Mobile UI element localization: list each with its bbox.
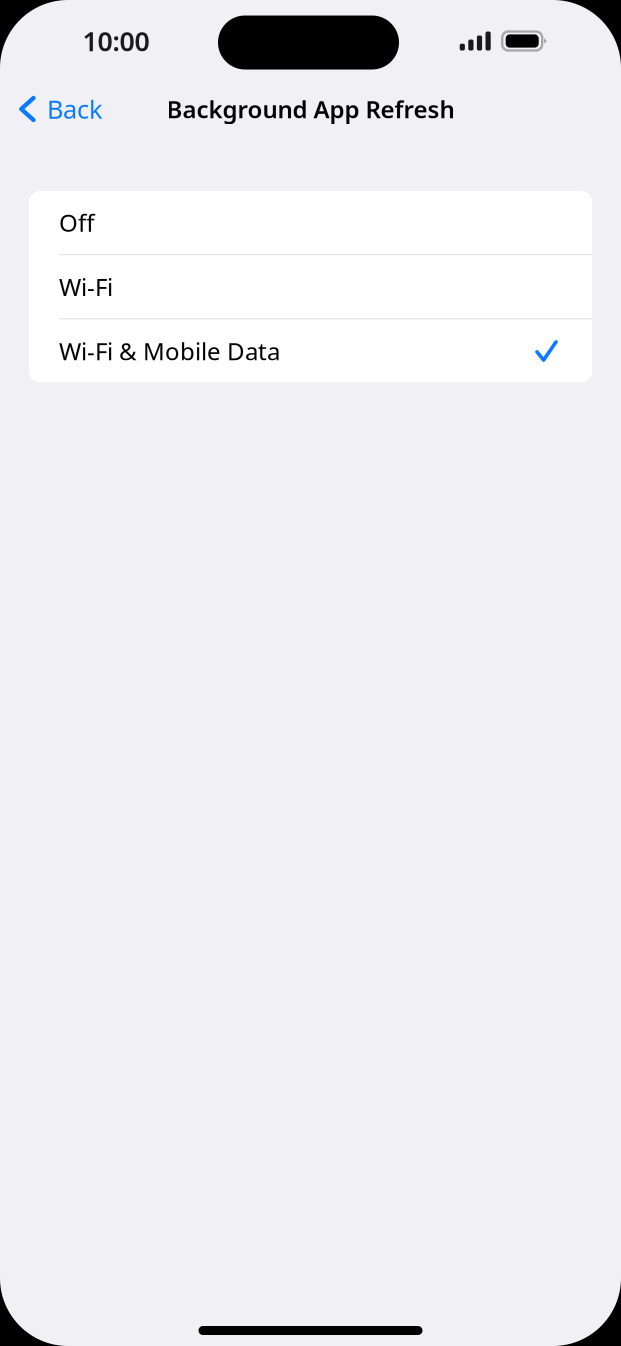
button[interactable]: Back <box>0 84 117 134</box>
staticText: 10:00 <box>82 23 149 59</box>
button[interactable]: Wi-Fi & Mobile Data <box>29 319 592 382</box>
button[interactable]: Off <box>29 191 592 254</box>
staticText: Background App Refresh <box>166 93 454 125</box>
staticText: Off <box>59 207 95 238</box>
staticText: Wi-Fi & Mobile Data <box>59 335 280 367</box>
button[interactable]: Wi-Fi <box>29 255 592 318</box>
staticText: Back <box>47 92 103 126</box>
staticText: Wi-Fi <box>59 271 113 303</box>
